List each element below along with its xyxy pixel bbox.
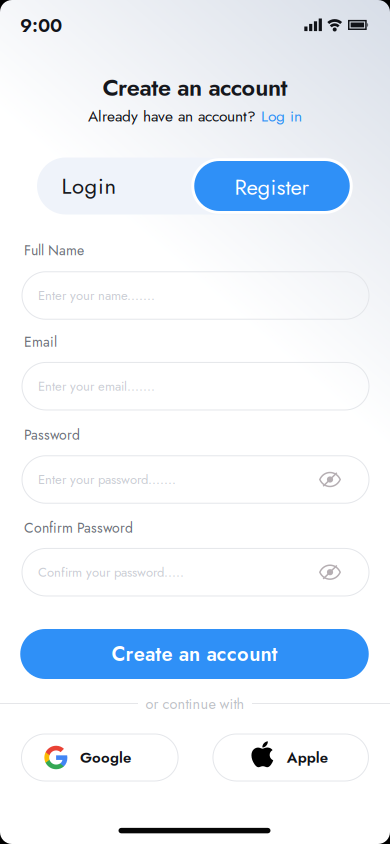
staticText: Log in bbox=[261, 105, 302, 127]
button[interactable]: Login bbox=[37, 157, 194, 214]
staticText: or continue with bbox=[145, 693, 244, 714]
staticText: Enter your password....... bbox=[38, 470, 176, 489]
staticText: Register bbox=[234, 171, 309, 203]
button[interactable]: Show password bbox=[319, 472, 341, 487]
button[interactable]: Show password bbox=[319, 565, 341, 580]
staticText: Create an account bbox=[111, 639, 278, 668]
button[interactable]: Log in bbox=[261, 105, 302, 127]
staticText: Enter your name....... bbox=[38, 286, 155, 305]
staticText: Password bbox=[24, 425, 80, 445]
staticText: 9:00 bbox=[20, 12, 62, 39]
staticText: Already have an account? bbox=[88, 105, 256, 127]
button[interactable]: Create an account bbox=[20, 629, 369, 679]
staticText: Full Name bbox=[24, 240, 84, 261]
staticText: Google bbox=[80, 747, 131, 768]
button[interactable]: Google bbox=[21, 734, 178, 781]
staticText: Confirm Password bbox=[24, 518, 133, 538]
staticText: Email bbox=[24, 332, 57, 352]
staticText: Apple bbox=[287, 747, 328, 768]
staticText: Enter your email....... bbox=[38, 377, 155, 396]
button[interactable]: Apple bbox=[213, 734, 368, 781]
staticText: Confirm your password..... bbox=[38, 563, 184, 582]
button[interactable]: Register bbox=[194, 161, 350, 211]
staticText: Create an account bbox=[102, 70, 288, 104]
staticText: Login bbox=[61, 170, 116, 202]
